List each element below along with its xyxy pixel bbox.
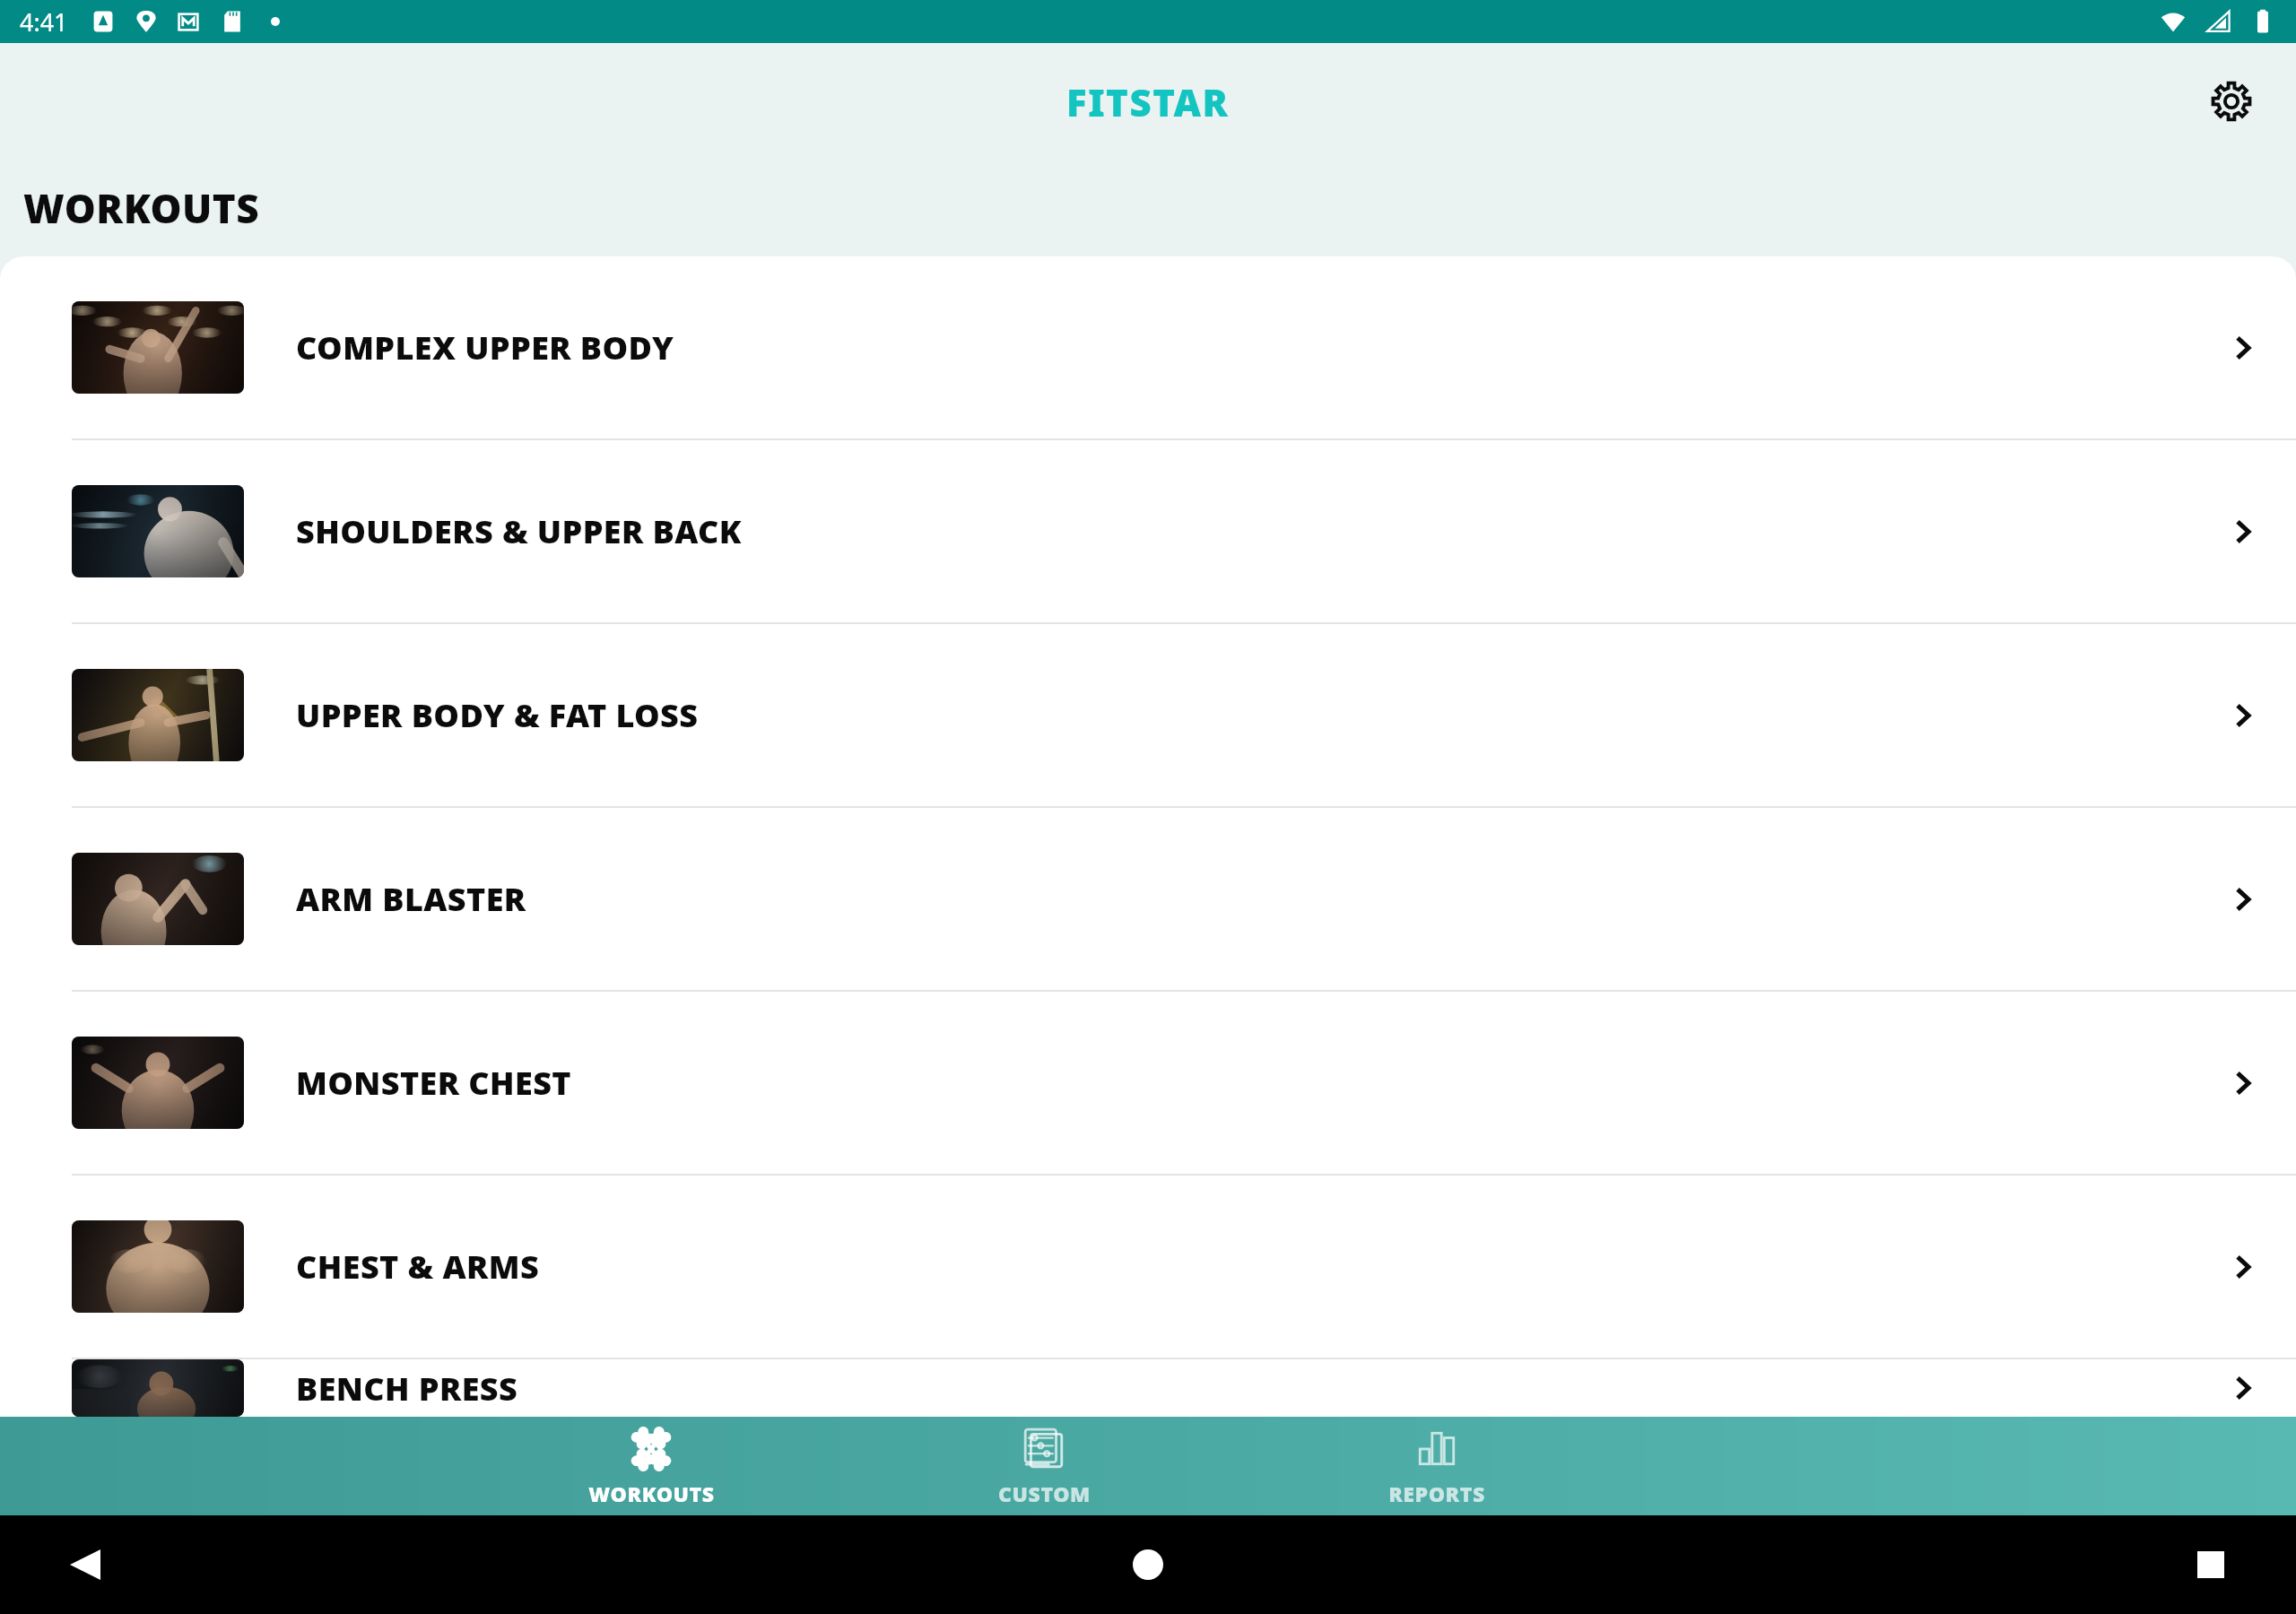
button[interactable]: Recent apps [2179, 1533, 2242, 1596]
staticText: WORKOUTS [588, 1479, 715, 1507]
button[interactable]: BENCH PRESS [0, 1359, 2296, 1417]
staticText: CHEST & ARMS [296, 1245, 540, 1289]
staticText: UPPER BODY & FAT LOSS [296, 693, 699, 737]
staticText: WORKOUTS [23, 181, 260, 235]
staticText: MONSTER CHEST [296, 1061, 572, 1105]
staticText: COMPLEX UPPER BODY [296, 325, 674, 369]
button[interactable]: CHEST & ARMS [0, 1176, 2296, 1358]
button[interactable]: ARM BLASTER [0, 808, 2296, 990]
staticText: 4:41 [20, 5, 68, 39]
button[interactable]: Settings [2199, 69, 2264, 134]
button[interactable]: COMPLEX UPPER BODY [0, 256, 2296, 438]
staticText: ARM BLASTER [296, 877, 526, 921]
button[interactable]: WORKOUTS [498, 1417, 804, 1515]
staticText: FITSTAR [1066, 76, 1230, 127]
staticText: CUSTOM [998, 1479, 1091, 1507]
button[interactable]: REPORTS [1283, 1417, 1590, 1515]
staticText: REPORTS [1388, 1479, 1485, 1507]
button[interactable]: SHOULDERS & UPPER BACK [0, 440, 2296, 622]
staticText: BENCH PRESS [296, 1367, 518, 1410]
staticText: SHOULDERS & UPPER BACK [296, 509, 742, 553]
button[interactable]: Home [1117, 1533, 1179, 1596]
button[interactable]: Back [54, 1533, 117, 1596]
button[interactable]: UPPER BODY & FAT LOSS [0, 624, 2296, 806]
button[interactable]: CUSTOM [891, 1417, 1197, 1515]
button[interactable]: MONSTER CHEST [0, 992, 2296, 1174]
